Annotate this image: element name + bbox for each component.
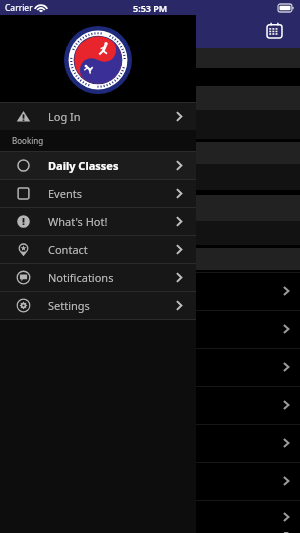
button[interactable] bbox=[0, 348, 300, 386]
button[interactable] bbox=[0, 310, 300, 348]
staticText: Booking bbox=[12, 135, 44, 146]
button[interactable] bbox=[0, 386, 300, 424]
staticText: Events bbox=[48, 186, 82, 201]
button[interactable] bbox=[0, 462, 300, 500]
staticText: Notifications bbox=[48, 270, 114, 285]
staticText: What's Hot! bbox=[48, 214, 108, 229]
button[interactable] bbox=[0, 272, 300, 310]
staticText: Settings bbox=[48, 298, 90, 313]
button[interactable] bbox=[0, 500, 300, 533]
button[interactable]: Log In bbox=[0, 102, 196, 130]
button[interactable] bbox=[0, 424, 300, 462]
button[interactable]: Notifications bbox=[0, 263, 196, 291]
staticText: Log In bbox=[48, 109, 81, 124]
button[interactable]: What's Hot! bbox=[0, 207, 196, 235]
staticText: Carrier bbox=[5, 2, 33, 14]
button[interactable]: Events bbox=[0, 179, 196, 207]
button[interactable]: Contact bbox=[0, 235, 196, 263]
staticText: Contact bbox=[48, 242, 88, 257]
button[interactable]: Settings bbox=[0, 291, 196, 319]
button[interactable]: Daily Classes bbox=[0, 151, 196, 179]
button[interactable]: Calendar bbox=[262, 18, 287, 43]
staticText: 5:53 PM bbox=[133, 2, 168, 14]
staticText: Daily Classes bbox=[48, 158, 119, 173]
